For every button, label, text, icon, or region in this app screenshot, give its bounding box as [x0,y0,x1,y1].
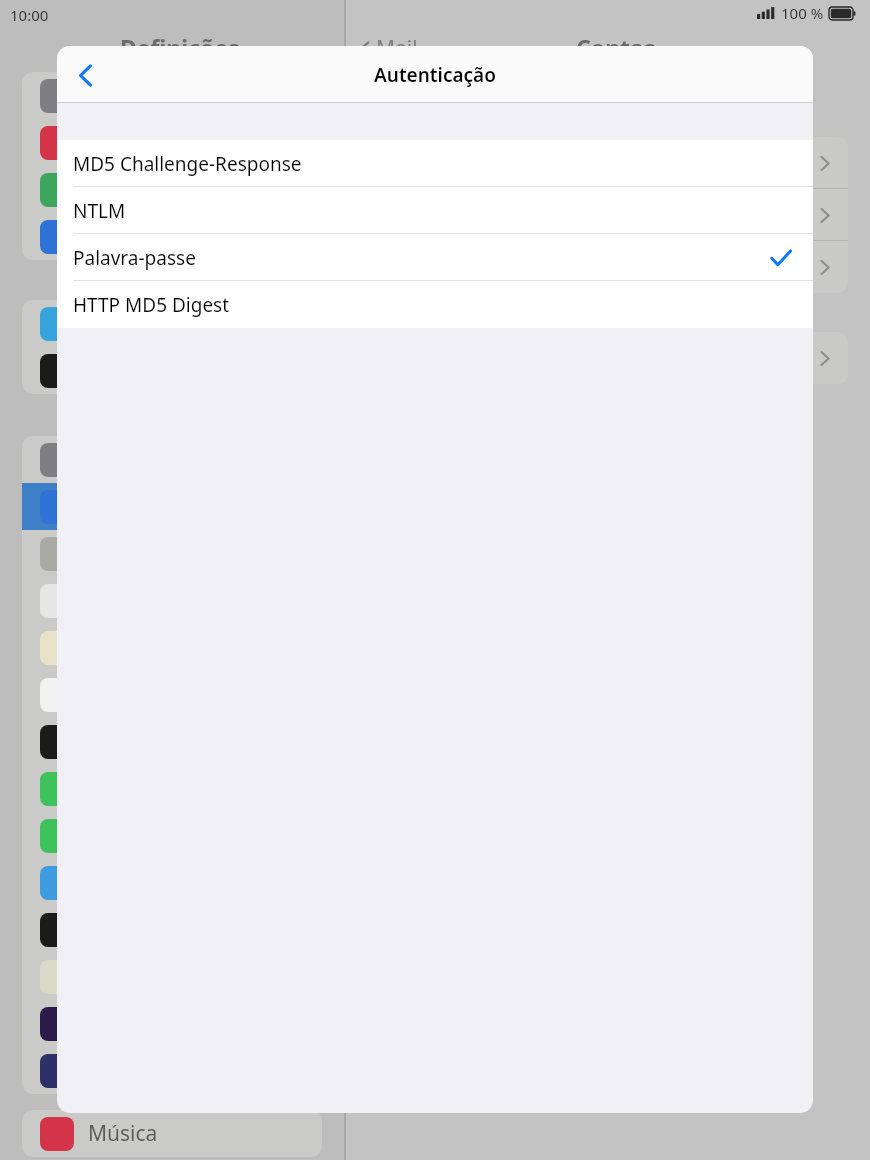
button[interactable] [366,137,848,189]
button[interactable]: HTTP MD5 Digest [57,281,813,328]
button[interactable] [22,166,322,213]
button[interactable] [22,119,322,166]
button[interactable] [22,577,322,624]
button[interactable] [22,72,322,119]
staticText: Mail [376,34,418,63]
button[interactable] [22,953,322,1000]
button[interactable]: Voltar [65,55,105,95]
button[interactable] [22,624,322,671]
staticText: 10:00 [10,5,49,25]
staticText: MD5 Challenge-Response [73,151,302,177]
staticText: NTLM [73,198,126,224]
staticText: Música [88,1119,158,1148]
button[interactable] [366,332,848,384]
button[interactable]: Música [22,1110,322,1157]
button[interactable] [22,300,322,347]
button[interactable] [22,718,322,765]
button[interactable] [366,241,848,293]
staticText: Contas [576,32,656,63]
button[interactable] [22,812,322,859]
staticText: 100 % [781,3,824,23]
staticText: Palavra-passe [73,245,196,271]
button[interactable] [22,1000,322,1047]
button[interactable] [22,906,322,953]
button[interactable] [22,671,322,718]
button[interactable]: Palavra-passe [57,234,813,281]
button[interactable] [366,189,848,241]
button[interactable] [22,436,322,483]
button[interactable]: NTLM [57,187,813,234]
button[interactable] [22,765,322,812]
button[interactable] [22,1047,322,1094]
staticText: Autenticação [374,62,496,88]
staticText: Definições [120,32,240,63]
button[interactable] [22,530,322,577]
staticText: HTTP MD5 Digest [73,292,230,318]
button[interactable] [22,347,322,394]
button[interactable]: MD5 Challenge-Response [57,140,813,187]
button[interactable] [22,859,322,906]
button[interactable] [22,483,322,530]
button[interactable] [22,213,322,260]
